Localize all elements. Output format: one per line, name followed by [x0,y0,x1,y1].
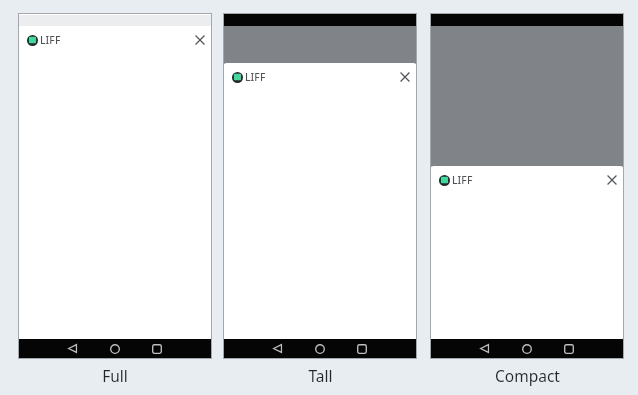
button[interactable]: Home [105,339,124,358]
button[interactable]: Back [268,339,287,358]
button[interactable]: Recent apps [352,339,371,358]
button[interactable]: LIFF [27,33,61,47]
button[interactable]: LIFF [439,173,473,187]
button[interactable]: Home [310,339,329,358]
button[interactable]: Home [517,339,536,358]
button[interactable]: Close [397,69,413,85]
button[interactable]: Back [475,339,494,358]
staticText: Compact [495,365,560,386]
staticText: LIFF [452,173,473,187]
button[interactable]: Recent apps [147,339,166,358]
button[interactable]: Close [604,172,620,188]
staticText: LIFF [245,70,266,84]
staticText: Full [102,365,128,386]
staticText: LIFF [40,33,61,47]
button[interactable]: Close [192,32,208,48]
button[interactable]: Back [63,339,82,358]
button[interactable]: LIFF [232,70,266,84]
staticText: Tall [308,365,333,386]
button[interactable]: Recent apps [559,339,578,358]
